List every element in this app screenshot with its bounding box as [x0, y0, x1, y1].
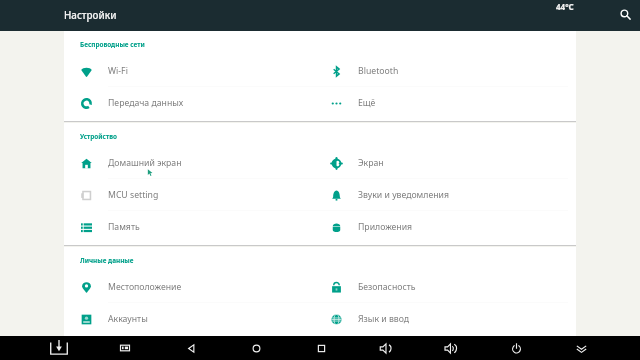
staticText: Местоположение — [108, 281, 182, 293]
staticText: Ещё — [358, 97, 376, 109]
staticText: Настройки — [64, 9, 117, 22]
staticText: Беспроводные сети — [80, 40, 145, 49]
button[interactable]: Ещё — [320, 87, 570, 119]
button[interactable]: Back — [158, 336, 224, 360]
button[interactable]: Power — [484, 336, 549, 360]
button[interactable]: Home — [224, 336, 289, 360]
button[interactable]: Download — [26, 336, 92, 360]
button[interactable]: MCU setting — [70, 179, 320, 211]
button[interactable]: Безопасность — [320, 271, 570, 303]
button[interactable]: Передача данных — [70, 87, 320, 119]
staticText: Личные данные — [80, 256, 134, 265]
button[interactable]: Volume down — [354, 336, 419, 360]
staticText: Передача данных — [108, 97, 184, 109]
button[interactable]: Wi-Fi — [70, 55, 320, 87]
button[interactable]: Память — [70, 211, 320, 243]
button[interactable]: Язык и ввод — [320, 303, 570, 335]
staticText: Язык и ввод — [358, 313, 410, 325]
button[interactable]: Screenshot — [92, 336, 158, 360]
button[interactable]: Звуки и уведомления — [320, 179, 570, 211]
button[interactable]: Hide navigation bar — [549, 336, 614, 360]
staticText: Аккаунты — [108, 313, 148, 325]
button[interactable]: Аккаунты — [70, 303, 320, 335]
button[interactable]: Recent apps — [289, 336, 354, 360]
button[interactable]: Местоположение — [70, 271, 320, 303]
staticText: Экран — [358, 157, 384, 169]
button[interactable]: Search — [614, 3, 637, 26]
staticText: Звуки и уведомления — [358, 189, 449, 201]
staticText: Память — [108, 221, 140, 233]
staticText: Wi-Fi — [108, 65, 128, 77]
button[interactable]: Bluetooth — [320, 55, 570, 87]
staticText: Безопасность — [358, 281, 416, 293]
button[interactable]: Приложения — [320, 211, 570, 243]
button[interactable]: Экран — [320, 147, 570, 179]
staticText: 44°C — [556, 1, 574, 12]
staticText: Приложения — [358, 221, 413, 233]
button[interactable]: Домашний экран — [70, 147, 320, 179]
staticText: Bluetooth — [358, 65, 399, 77]
button[interactable]: Volume up — [419, 336, 484, 360]
staticText: MCU setting — [108, 189, 159, 201]
staticText: Устройство — [80, 132, 117, 141]
staticText: Домашний экран — [108, 157, 182, 169]
